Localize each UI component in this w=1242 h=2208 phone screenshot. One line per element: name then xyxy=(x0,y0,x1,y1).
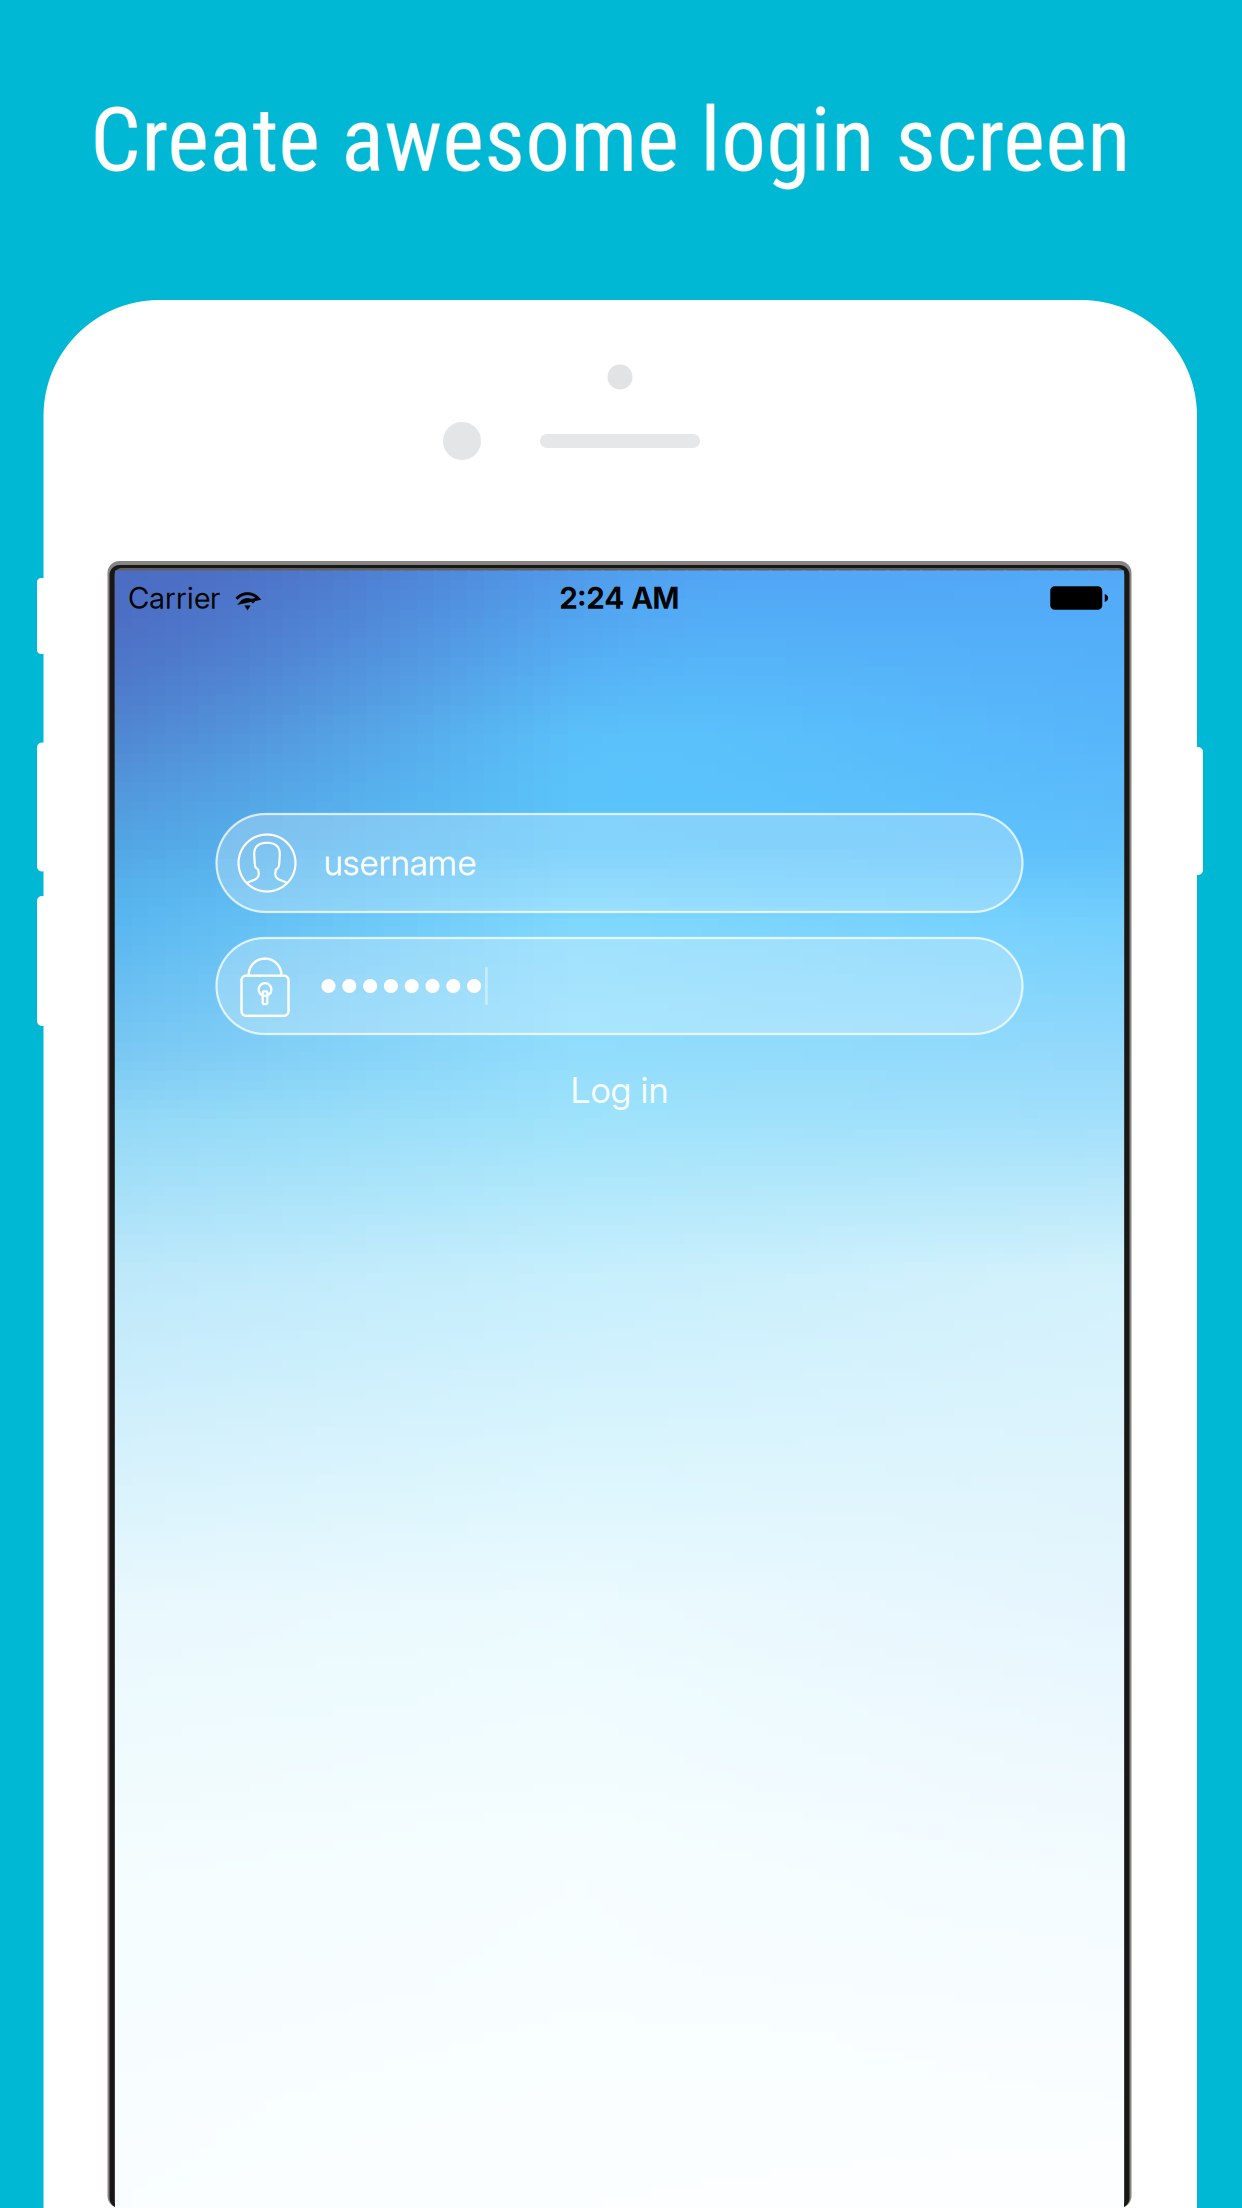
staticText: Log in xyxy=(570,1068,668,1112)
button[interactable] xyxy=(216,938,1022,1034)
staticText: Create awesome login screen xyxy=(90,88,1130,192)
staticText: username xyxy=(323,842,476,884)
button[interactable]: username xyxy=(216,814,1022,912)
staticText: 2:24 AM xyxy=(559,580,679,616)
button[interactable]: Log in xyxy=(216,1052,1022,1128)
staticText: Carrier xyxy=(128,580,220,616)
